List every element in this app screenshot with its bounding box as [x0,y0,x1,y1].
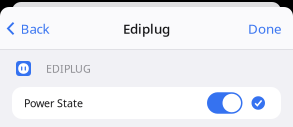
button[interactable]: Power State [0,87,293,119]
staticText: Power State [24,96,83,110]
staticText: Back [20,20,49,37]
button[interactable]: Back [0,14,49,43]
staticText: Done [248,20,282,37]
staticText: EDIPLUG [46,61,91,76]
staticText: Ediplug [123,20,170,37]
button[interactable]: Done [248,14,293,43]
